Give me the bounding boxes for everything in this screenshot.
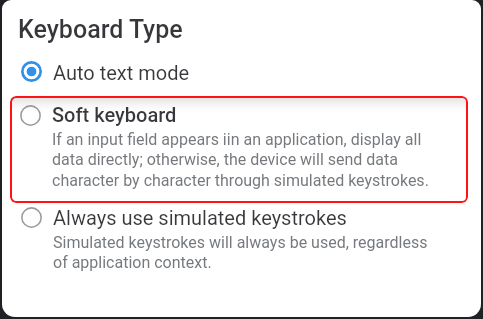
toggle[interactable]: Auto text mode xyxy=(11,58,469,86)
staticText: Keyboard Type xyxy=(18,15,183,44)
toggle[interactable]: Always use simulated keystrokes xyxy=(11,204,469,276)
staticText: Auto text mode xyxy=(53,61,190,84)
staticText: Simulated keystrokes will always be used… xyxy=(53,233,443,272)
staticText: If an input field appears iin an applica… xyxy=(52,130,442,190)
staticText: Always use simulated keystrokes xyxy=(53,206,347,229)
toggle[interactable]: Soft keyboard xyxy=(10,96,468,203)
staticText: Soft keyboard xyxy=(52,103,177,126)
